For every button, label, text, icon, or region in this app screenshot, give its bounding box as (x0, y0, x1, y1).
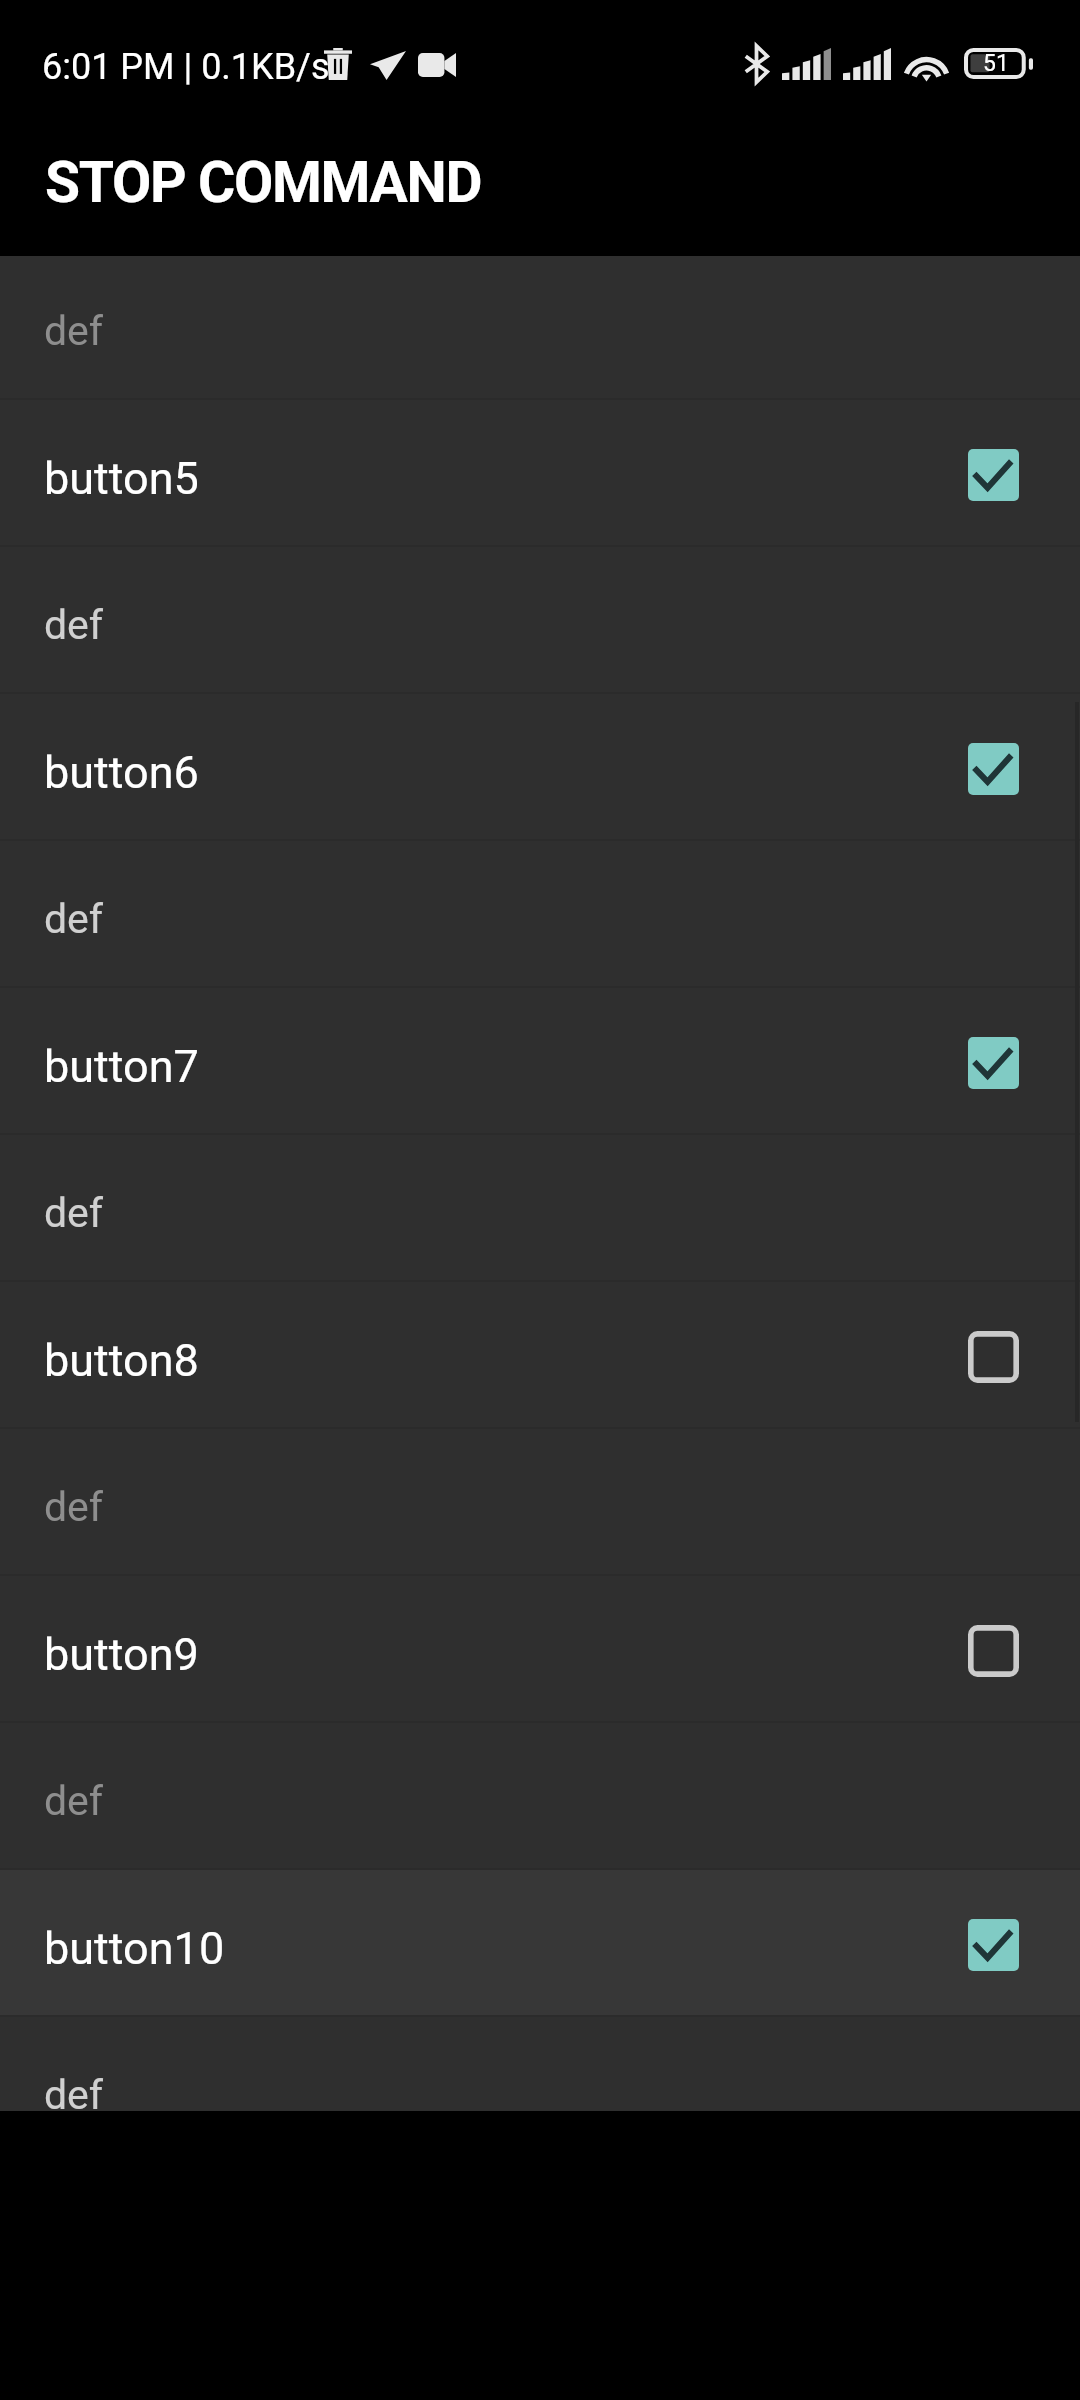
other: Send (370, 51, 406, 80)
staticText: def (44, 601, 104, 649)
other: Bluetooth (744, 46, 769, 82)
other: Battery 51 percent (964, 48, 1033, 79)
button[interactable]: def (0, 1723, 1080, 1871)
other: Mobile signal (843, 48, 891, 80)
button[interactable]: button9 (0, 1576, 1080, 1724)
button[interactable]: def (0, 2017, 1080, 2111)
button[interactable]: Checked (945, 427, 1041, 523)
staticText: 6:01 PM | 0.1KB/s (42, 46, 330, 88)
button[interactable]: Unchecked (945, 1603, 1041, 1699)
button[interactable]: button10 (0, 1870, 1080, 2018)
staticText: button10 (44, 1922, 225, 1975)
button[interactable]: Checked (945, 1897, 1041, 1993)
button[interactable]: button5 (0, 400, 1080, 548)
button[interactable]: def (0, 841, 1080, 989)
staticText: button9 (44, 1628, 199, 1681)
button[interactable]: def (0, 1429, 1080, 1577)
staticText: button7 (44, 1040, 199, 1093)
staticText: def (44, 307, 104, 355)
other: Wi-Fi (903, 47, 950, 81)
staticText: 51 (983, 50, 1009, 77)
button[interactable]: def (0, 256, 1080, 401)
staticText: def (44, 1483, 104, 1531)
button[interactable]: button8 (0, 1282, 1080, 1430)
button[interactable]: button7 (0, 988, 1080, 1136)
other: Delete (324, 48, 352, 80)
other: Mobile signal (782, 48, 831, 80)
button[interactable]: def (0, 547, 1080, 695)
staticText: button6 (44, 746, 199, 799)
staticText: STOP COMMAND (45, 149, 482, 216)
staticText: button5 (44, 452, 199, 505)
button[interactable]: button6 (0, 694, 1080, 842)
staticText: def (44, 895, 104, 943)
button[interactable]: Checked (945, 721, 1041, 817)
button[interactable]: def (0, 1135, 1080, 1283)
staticText: button8 (44, 1334, 199, 1387)
staticText: def (44, 1189, 104, 1237)
other: Screen recording (418, 53, 456, 77)
button[interactable]: Unchecked (945, 1309, 1041, 1405)
staticText: def (44, 1777, 104, 1825)
button[interactable]: Checked (945, 1015, 1041, 1111)
staticText: def (44, 2071, 104, 2111)
